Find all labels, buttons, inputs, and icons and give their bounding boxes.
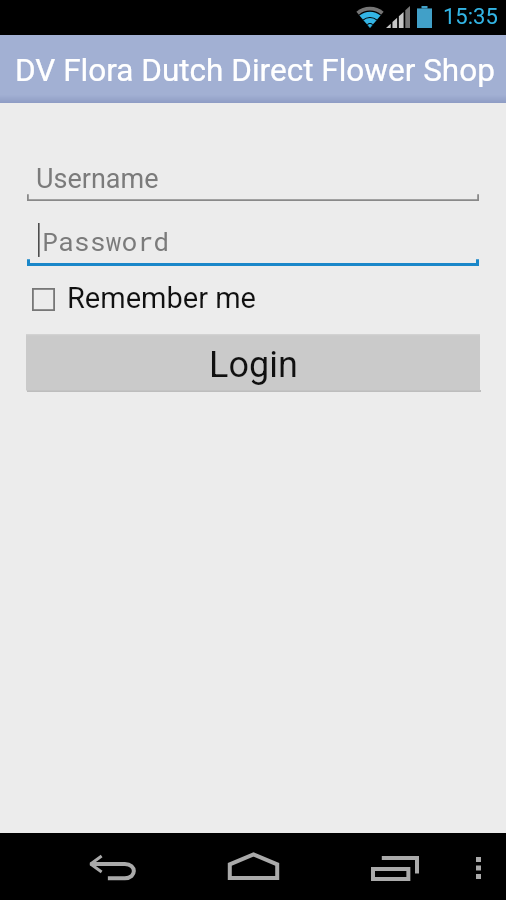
button[interactable]: More options (450, 834, 506, 900)
button[interactable]: Password (27, 214, 479, 266)
staticText: 15:35 (443, 4, 498, 30)
button[interactable]: Remember me (27, 281, 264, 317)
button[interactable]: Username (27, 152, 479, 201)
staticText: Remember me (67, 281, 256, 315)
staticText: Username (36, 163, 159, 195)
staticText: Password (42, 223, 170, 258)
button[interactable]: Recent apps (361, 835, 429, 900)
button[interactable]: Home (219, 833, 287, 900)
staticText: Login (209, 344, 298, 386)
staticText: DV Flora Dutch Direct Flower Shop (15, 52, 495, 89)
button[interactable]: Login (26, 334, 480, 392)
button[interactable]: Back (78, 833, 146, 900)
